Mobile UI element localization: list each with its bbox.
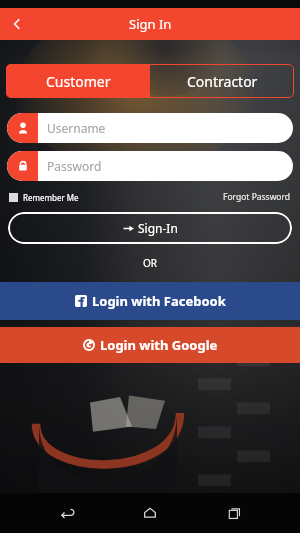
button[interactable]: Sign-In (8, 212, 292, 244)
button[interactable]: Login with Facebook (0, 282, 300, 320)
button[interactable]: Back (0, 8, 34, 40)
button[interactable]: Login with Google (0, 327, 300, 363)
button[interactable]: Contractor (150, 64, 294, 98)
staticText: Username (47, 120, 106, 136)
button[interactable]: Recent apps (217, 496, 251, 530)
staticText: Sign-In (138, 220, 178, 236)
staticText: Login with Google (100, 336, 218, 354)
staticText: Login with Facebook (92, 292, 226, 310)
button[interactable]: Forgot Password (223, 191, 291, 203)
staticText: Password (47, 158, 102, 174)
staticText: Remember Me (23, 192, 79, 203)
button[interactable]: Home (133, 496, 167, 530)
staticText: Sign In (129, 15, 172, 33)
button[interactable]: Customer (6, 64, 150, 98)
button[interactable]: Username (7, 113, 293, 143)
button[interactable]: Password (7, 151, 293, 181)
button[interactable]: Back (50, 496, 84, 530)
staticText: Forgot Password (223, 191, 291, 203)
staticText: Contractor (187, 72, 258, 91)
button[interactable]: Remember Me (9, 192, 79, 203)
staticText: Customer (46, 72, 111, 91)
staticText: OR (0, 256, 300, 270)
